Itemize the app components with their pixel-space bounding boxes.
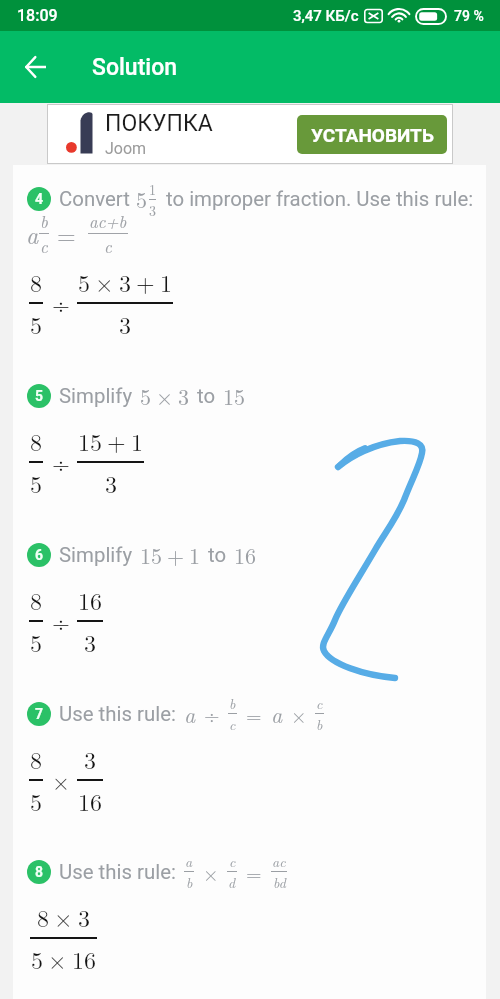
staticText: 3 [119,265,131,299]
staticText: Use this rule: [59,860,176,884]
staticText: 3 [119,307,131,341]
staticText: 1 [149,179,156,199]
staticText: ac+b [89,209,127,233]
staticText: c [104,234,112,258]
staticText: 8 [30,742,42,776]
staticText: 3 [84,742,96,776]
staticText: 15 [78,424,102,458]
staticText: c [40,234,48,258]
staticText: Use this rule: [59,702,176,726]
staticText: 16 [78,583,102,617]
staticText: 8 [30,424,42,458]
staticText: 3 [105,466,117,500]
staticText: × [291,700,307,728]
staticText: 8 [30,265,42,299]
button[interactable]: УСТАНОВИТЬ [297,115,447,154]
staticText: 1 [131,424,143,458]
staticText: 1 [160,265,172,299]
staticText: 3 [149,200,156,220]
staticText: ÷ [52,287,70,320]
staticText: = [57,217,76,251]
staticText: Simplify [59,543,133,567]
staticText: b [40,209,48,233]
staticText: a [185,851,193,871]
staticText: 5 [140,380,152,411]
staticText: 8 [30,583,42,617]
staticText: = [246,858,262,886]
staticText: 5 [31,942,43,976]
staticText: ÷ [204,700,220,728]
staticText: × [52,764,70,797]
staticText: 5 [136,183,148,214]
staticText: ÷ [52,605,70,638]
staticText: 3,47 КБ/c [293,7,359,25]
staticText: 16 [234,539,257,570]
staticText: Joom [105,139,147,158]
staticText: + [167,539,185,570]
staticText: УСТАНОВИТЬ [311,124,434,146]
staticText: 5 [35,388,44,404]
staticText: ПОКУПКА [105,110,213,137]
staticText: 8 [35,864,44,880]
staticText: 79 % [454,8,484,24]
staticText: 5 [78,265,90,299]
staticText: 3 [78,900,90,934]
button[interactable]: Back [12,43,60,91]
staticText: ÷ [52,446,70,479]
staticText: × [95,265,114,299]
staticText: = [246,700,262,728]
staticText: c [316,693,323,713]
staticText: b [229,693,236,713]
staticText: 8 [37,900,49,934]
staticText: 5 [30,307,42,341]
staticText: a [271,698,283,729]
staticText: bd [273,872,286,892]
staticText: 18:09 [17,6,58,25]
staticText: to improper fraction. Use this rule: [166,187,474,211]
staticText: to [197,384,216,408]
staticText: Solution [92,54,178,81]
staticText: × [203,858,219,886]
staticText: 15 [223,380,246,411]
staticText: Simplify [59,384,133,408]
staticText: + [136,265,155,299]
staticText: × [156,380,174,411]
staticText: 3 [178,380,190,411]
staticText: × [54,900,73,934]
staticText: 4 [35,191,44,207]
staticText: b [186,872,193,892]
staticText: × [48,942,67,976]
staticText: 1 [189,539,201,570]
staticText: 15 [140,539,163,570]
staticText: 5 [30,784,42,818]
staticText: 5 [30,466,42,500]
staticText: 3 [84,625,96,659]
staticText: 16 [72,942,96,976]
staticText: a [184,698,196,729]
staticText: 5 [30,625,42,659]
staticText: b [316,714,323,734]
staticText: a [26,217,39,251]
staticText: to [208,543,227,567]
staticText: ac [272,851,286,871]
staticText: Convert [59,187,130,211]
staticText: d [228,872,236,892]
staticText: c [229,851,236,871]
staticText: 6 [35,547,44,563]
button[interactable]: ПОКУПКА [48,105,452,163]
staticText: c [229,714,236,734]
staticText: 16 [78,784,102,818]
staticText: 7 [35,706,44,722]
staticText: + [107,424,126,458]
